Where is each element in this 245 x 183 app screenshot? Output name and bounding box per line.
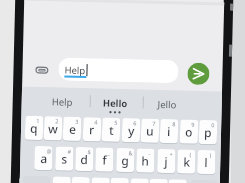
- button[interactable]: n: [149, 179, 168, 183]
- button[interactable]: [35, 65, 50, 75]
- staticText: (: [189, 151, 192, 158]
- button[interactable]: Hello: [89, 94, 140, 112]
- staticText: 3: [75, 118, 79, 125]
- button[interactable]: o: [180, 119, 198, 144]
- button[interactable]: [58, 57, 179, 83]
- staticText: _: [107, 149, 111, 156]
- staticText: q: [30, 120, 38, 136]
- staticText: i: [167, 123, 171, 139]
- button[interactable]: t: [102, 117, 120, 142]
- button[interactable]: [187, 63, 210, 85]
- button[interactable]: Jello: [148, 96, 185, 113]
- staticText: -: [148, 150, 151, 157]
- button[interactable]: Help: [43, 93, 80, 111]
- staticText: e: [69, 121, 76, 137]
- staticText: h: [141, 152, 149, 169]
- button[interactable]: z: [52, 176, 71, 183]
- staticText: &: [128, 149, 134, 156]
- button[interactable]: x: [71, 177, 90, 183]
- staticText: d: [80, 151, 88, 167]
- button[interactable]: s: [55, 146, 74, 171]
- staticText: Help: [64, 64, 86, 77]
- button[interactable]: k: [177, 149, 196, 174]
- staticText: +: [169, 150, 174, 157]
- staticText: f: [102, 151, 107, 168]
- button[interactable]: w: [44, 116, 62, 140]
- staticText: r: [89, 121, 95, 137]
- staticText: g: [121, 152, 129, 168]
- staticText: Help: [52, 95, 73, 109]
- staticText: p: [204, 124, 212, 140]
- staticText: 8: [172, 120, 176, 127]
- staticText: #: [67, 148, 72, 155]
- staticText: 7: [152, 120, 156, 127]
- staticText: $: [87, 148, 92, 155]
- staticText: o: [185, 123, 193, 140]
- button[interactable]: h: [136, 148, 155, 173]
- staticText: 5: [114, 119, 118, 126]
- staticText: 1: [36, 117, 40, 124]
- staticText: ): [209, 151, 212, 158]
- staticText: 4: [94, 118, 98, 125]
- staticText: w: [48, 120, 58, 136]
- staticText: @: [46, 147, 52, 154]
- staticText: y: [128, 122, 135, 138]
- button[interactable]: c: [91, 177, 110, 183]
- staticText: 9: [191, 121, 195, 128]
- button[interactable]: e: [63, 117, 81, 141]
- button[interactable]: b: [130, 178, 149, 183]
- staticText: k: [183, 153, 190, 170]
- button[interactable]: q: [25, 116, 43, 140]
- button[interactable]: v: [110, 178, 129, 183]
- button[interactable]: u: [141, 118, 159, 143]
- staticText: Hello: [103, 96, 128, 110]
- button[interactable]: d: [75, 147, 94, 171]
- staticText: a: [40, 150, 48, 166]
- staticText: 2: [55, 117, 59, 124]
- button[interactable]: f: [95, 147, 114, 172]
- button[interactable]: i: [160, 119, 178, 143]
- button[interactable]: g: [116, 148, 135, 172]
- staticText: j: [164, 153, 168, 169]
- staticText: 0: [211, 121, 215, 128]
- staticText: Jello: [157, 98, 177, 111]
- staticText: l: [204, 154, 208, 170]
- button[interactable]: m: [168, 179, 187, 183]
- button[interactable]: p: [199, 120, 217, 144]
- staticText: u: [146, 123, 154, 139]
- button[interactable]: r: [83, 117, 101, 141]
- button[interactable]: l: [197, 150, 216, 174]
- staticText: t: [109, 122, 114, 138]
- button[interactable]: a: [34, 146, 53, 170]
- staticText: s: [61, 150, 67, 167]
- staticText: 6: [133, 119, 137, 126]
- button[interactable]: j: [157, 149, 176, 173]
- button[interactable]: y: [122, 118, 140, 142]
